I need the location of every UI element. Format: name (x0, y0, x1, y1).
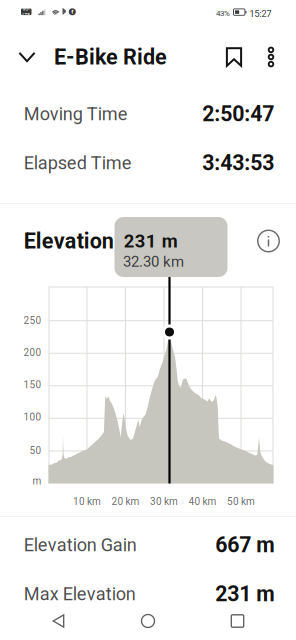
staticText: 2:50:47 (202, 101, 274, 126)
staticText: 667 m (215, 532, 274, 557)
staticText: f (71, 8, 73, 15)
button[interactable]: Elevation Gain (0, 525, 296, 565)
staticText: 10 km (73, 496, 101, 507)
staticText: Max Elevation (24, 583, 136, 605)
staticText: Moving Time (24, 103, 128, 125)
button[interactable]: Moving Time (0, 94, 296, 134)
staticText: Elevation Gain (24, 534, 137, 556)
staticText: 15:27 (249, 8, 271, 19)
staticText: 231 m (215, 581, 274, 606)
staticText: 231 m (124, 230, 178, 252)
staticText: VoLTE (22, 5, 30, 18)
button[interactable]: Max Elevation (0, 574, 296, 614)
button[interactable]: Bookmark (214, 36, 254, 78)
staticText: 150 (24, 379, 42, 391)
button[interactable]: Info (251, 220, 285, 262)
button[interactable]: Elapsed Time (0, 143, 296, 183)
button[interactable]: Back (27, 604, 89, 638)
staticText: E-Bike Ride (54, 44, 167, 70)
staticText: 32.30 km (123, 253, 184, 270)
staticText: 50 km (227, 496, 255, 507)
staticText: 250 (24, 315, 42, 326)
button[interactable]: Recents (206, 604, 268, 638)
staticText: 20 km (111, 496, 139, 507)
button[interactable]: Collapse (9, 36, 45, 78)
staticText: 50 (30, 445, 42, 456)
staticText: 200 (24, 347, 42, 358)
staticText: Elapsed Time (24, 152, 132, 174)
staticText: 40 km (188, 496, 216, 507)
staticText: 3:43:53 (202, 150, 274, 175)
button[interactable]: Home (117, 604, 179, 638)
button[interactable]: More options (254, 36, 288, 78)
staticText: m (33, 475, 42, 487)
staticText: Elevation (24, 228, 114, 254)
staticText: 43% (216, 9, 230, 18)
staticText: 100 (24, 411, 42, 423)
staticText: 30 km (150, 496, 178, 507)
